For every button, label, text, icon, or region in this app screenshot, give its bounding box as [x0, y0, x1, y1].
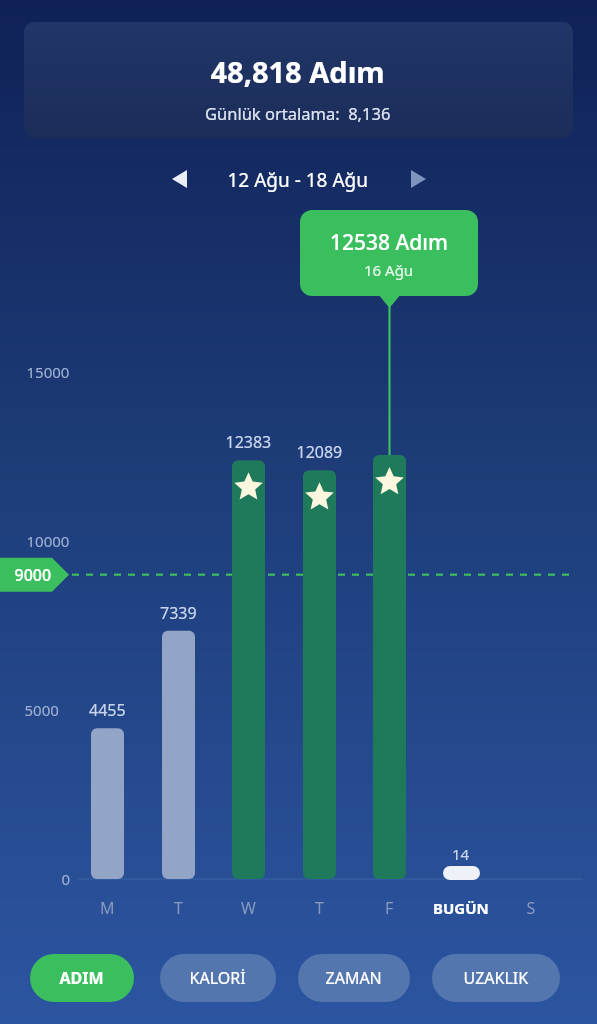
- button[interactable]: [30, 954, 134, 1002]
- button[interactable]: [298, 954, 410, 1002]
- button[interactable]: [160, 954, 276, 1002]
- button[interactable]: [432, 954, 560, 1002]
- button[interactable]: [300, 210, 478, 296]
- button[interactable]: Next week: [394, 158, 444, 202]
- button[interactable]: [24, 22, 573, 138]
- button[interactable]: Previous week: [156, 158, 206, 202]
